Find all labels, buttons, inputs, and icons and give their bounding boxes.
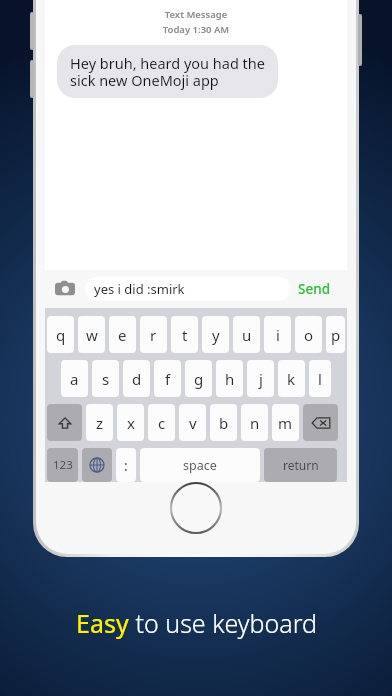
button[interactable]: b — [210, 404, 237, 441]
staticText: space — [183, 457, 217, 474]
button[interactable]: Camera — [54, 278, 76, 300]
button[interactable]: k — [278, 360, 305, 397]
button[interactable]: u — [233, 316, 260, 353]
button[interactable]: l — [309, 360, 331, 397]
button[interactable]: t — [171, 316, 198, 353]
staticText: t — [182, 325, 188, 345]
staticText: return — [283, 457, 319, 473]
staticText: r — [150, 325, 157, 345]
staticText: g — [194, 369, 204, 389]
button[interactable]: : — [116, 448, 136, 482]
button[interactable]: Backspace — [303, 404, 338, 441]
staticText: 123 — [53, 457, 73, 473]
staticText: Hey bruh, heard you had the sick new One… — [70, 53, 265, 90]
staticText: q — [56, 325, 66, 345]
staticText: to use keyboard — [129, 606, 317, 640]
button[interactable]: Change keyboard — [82, 448, 112, 482]
button[interactable]: m — [272, 404, 299, 441]
button[interactable]: w — [78, 316, 105, 353]
button[interactable]: i — [264, 316, 291, 353]
staticText: Easy — [76, 606, 129, 640]
staticText: e — [118, 325, 127, 345]
staticText: d — [132, 369, 142, 389]
button[interactable]: p — [326, 316, 345, 353]
button[interactable]: 123 — [47, 448, 78, 482]
button[interactable]: yes i did :smirk — [85, 277, 291, 301]
staticText: z — [96, 413, 104, 433]
button[interactable]: Shift — [47, 404, 82, 441]
button[interactable]: v — [179, 404, 206, 441]
staticText: o — [304, 325, 314, 345]
button[interactable]: e — [109, 316, 136, 353]
staticText: yes i did :smirk — [94, 280, 185, 298]
button[interactable]: g — [185, 360, 212, 397]
staticText: j — [259, 369, 263, 389]
staticText: y — [212, 325, 220, 345]
button[interactable]: q — [47, 316, 74, 353]
button[interactable]: n — [241, 404, 268, 441]
staticText: a — [70, 369, 79, 389]
staticText: l — [318, 369, 322, 389]
button[interactable]: c — [148, 404, 175, 441]
button[interactable]: space — [140, 448, 260, 482]
staticText: i — [276, 325, 280, 345]
button[interactable]: s — [92, 360, 119, 397]
staticText: Text Message — [45, 8, 347, 21]
button[interactable]: j — [247, 360, 274, 397]
button[interactable]: Send — [291, 280, 338, 298]
staticText: p — [331, 325, 341, 345]
button[interactable]: f — [154, 360, 181, 397]
staticText: w — [86, 325, 98, 345]
staticText: k — [287, 369, 296, 389]
button[interactable]: h — [216, 360, 243, 397]
staticText: v — [189, 413, 197, 433]
staticText: : — [124, 456, 128, 475]
staticText: m — [278, 413, 293, 433]
button[interactable]: z — [86, 404, 113, 441]
staticText: x — [127, 413, 135, 433]
button[interactable]: y — [202, 316, 229, 353]
staticText: c — [158, 413, 166, 433]
staticText: u — [242, 325, 252, 345]
button[interactable]: return — [264, 448, 337, 482]
staticText: s — [102, 369, 110, 389]
button[interactable]: r — [140, 316, 167, 353]
staticText: h — [225, 369, 235, 389]
staticText: n — [250, 413, 260, 433]
staticText: Today 1:30 AM — [45, 23, 347, 36]
staticText: b — [219, 413, 229, 433]
button[interactable]: d — [123, 360, 150, 397]
staticText: Send — [298, 280, 331, 298]
button[interactable]: Hey bruh, heard you had the sick new One… — [57, 45, 278, 98]
button[interactable]: a — [61, 360, 88, 397]
button[interactable]: x — [117, 404, 144, 441]
staticText: f — [165, 369, 171, 389]
button[interactable]: o — [295, 316, 322, 353]
